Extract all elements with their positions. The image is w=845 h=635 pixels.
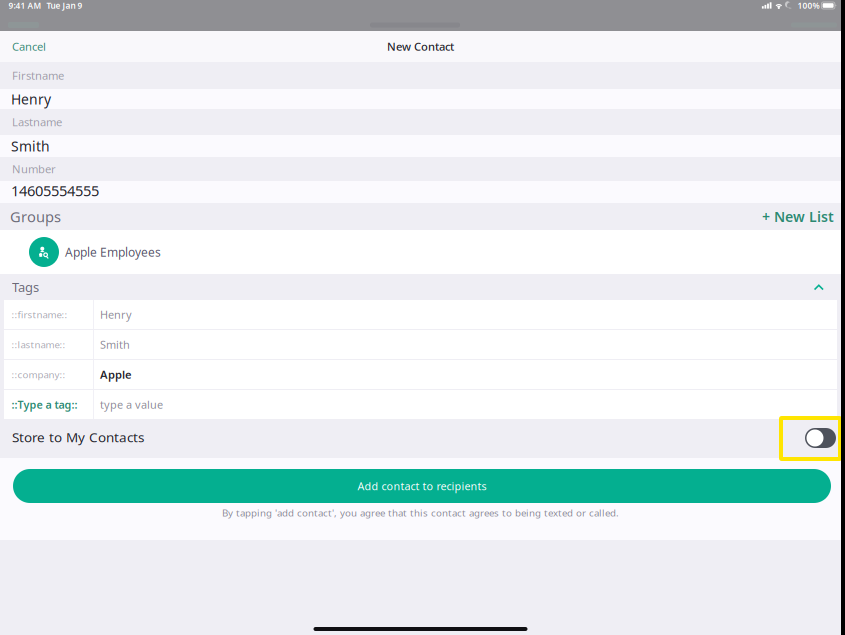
button[interactable]: Collapse tags xyxy=(808,277,830,297)
staticText: type a value xyxy=(100,397,163,412)
staticText: ::firstname:: xyxy=(11,308,67,321)
staticText: ::company:: xyxy=(11,368,65,381)
staticText: Tue Jan 9 xyxy=(46,0,82,11)
button[interactable]: ::lastname:: xyxy=(4,330,837,359)
staticText: By tapping 'add contact', you agree that… xyxy=(222,506,619,519)
staticText: Henry xyxy=(100,307,132,322)
staticText: Smith xyxy=(11,137,50,155)
staticText: 9:41 AM xyxy=(8,0,41,11)
staticText: 14605554555 xyxy=(11,180,99,200)
staticText: Apple xyxy=(100,367,132,382)
staticText: ::lastname:: xyxy=(11,338,65,351)
button[interactable]: Store to My Contacts xyxy=(781,418,840,459)
button[interactable]: ::company:: xyxy=(4,360,837,389)
staticText: 100% xyxy=(797,0,819,11)
staticText: Henry xyxy=(11,90,51,108)
button[interactable]: Cancel xyxy=(0,32,60,61)
staticText: Groups xyxy=(10,206,61,226)
staticText: Tags xyxy=(12,278,39,296)
button[interactable]: ::firstname:: xyxy=(4,300,837,329)
button[interactable]: Apple Employees xyxy=(0,230,841,274)
staticText: ::Type a tag:: xyxy=(11,397,77,412)
staticText: + New List xyxy=(762,207,834,226)
staticText: Cancel xyxy=(12,39,46,54)
button[interactable]: ::Type a tag:: xyxy=(4,390,837,419)
staticText: Firstname xyxy=(12,68,64,83)
staticText: Add contact to recipients xyxy=(357,479,486,493)
staticText: Smith xyxy=(100,337,130,352)
staticText: Apple Employees xyxy=(65,244,161,260)
button[interactable]: Add contact to recipients xyxy=(13,469,831,503)
button[interactable]: + New List xyxy=(752,202,841,231)
staticText: Store to My Contacts xyxy=(12,428,144,446)
staticText: Number xyxy=(12,161,56,177)
staticText: Lastname xyxy=(12,114,62,130)
staticText: New Contact xyxy=(387,39,454,54)
